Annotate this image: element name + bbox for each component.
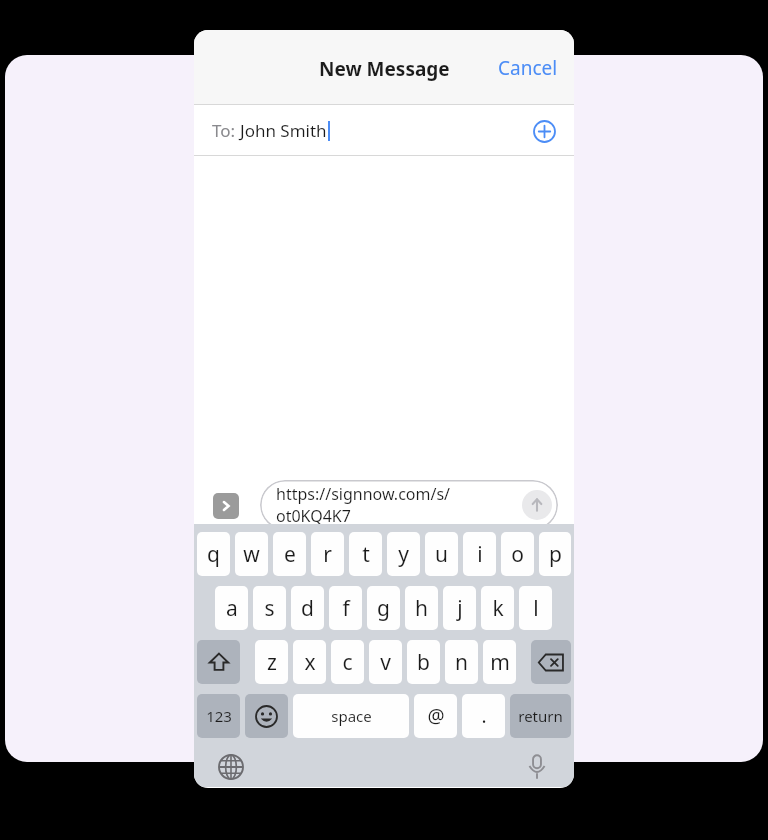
staticText: . — [481, 703, 487, 729]
staticText: y — [398, 540, 409, 569]
button[interactable]: u — [425, 532, 458, 576]
button[interactable]: Shift — [197, 640, 240, 684]
button[interactable]: Send — [522, 490, 552, 520]
button[interactable]: t — [349, 532, 382, 576]
staticText: n — [455, 648, 468, 677]
button[interactable]: n — [445, 640, 478, 684]
staticText: z — [267, 648, 277, 677]
button[interactable]: i — [463, 532, 496, 576]
staticText: w — [243, 540, 260, 569]
staticText: x — [304, 648, 316, 677]
staticText: l — [533, 594, 539, 623]
staticText: https://signnow.com/s/ — [276, 483, 451, 505]
button[interactable]: s — [253, 586, 286, 630]
button[interactable]: Emoji — [245, 694, 288, 738]
staticText: return — [518, 706, 563, 726]
button[interactable]: g — [367, 586, 400, 630]
other: Shift — [197, 640, 240, 684]
staticText: d — [301, 594, 314, 623]
staticText: v — [380, 648, 391, 677]
button[interactable]: f — [329, 586, 362, 630]
button[interactable]: . — [462, 694, 505, 738]
staticText: s — [264, 594, 275, 623]
other: Emoji — [245, 694, 288, 738]
staticText: r — [323, 540, 332, 569]
button[interactable]: r — [311, 532, 344, 576]
staticText: c — [342, 648, 353, 677]
button[interactable]: d — [291, 586, 324, 630]
staticText: o — [511, 540, 524, 569]
button[interactable]: v — [369, 640, 402, 684]
staticText: @ — [427, 703, 445, 729]
button[interactable]: p — [539, 532, 571, 576]
button[interactable]: Switch keyboard — [212, 748, 250, 786]
staticText: space — [331, 706, 372, 726]
button[interactable]: 123 — [197, 694, 240, 738]
staticText: Cancel — [498, 55, 558, 81]
button[interactable]: z — [255, 640, 288, 684]
staticText: j — [457, 594, 463, 623]
button[interactable]: k — [481, 586, 514, 630]
staticText: John Smith — [240, 119, 327, 142]
button[interactable]: y — [387, 532, 420, 576]
staticText: a — [226, 594, 238, 623]
button[interactable]: return — [510, 694, 571, 738]
staticText: ot0KQ4K7 — [276, 505, 351, 527]
staticText: h — [415, 594, 428, 623]
staticText: b — [417, 648, 430, 677]
staticText: t — [362, 540, 370, 569]
staticText: g — [377, 594, 390, 623]
button[interactable]: e — [273, 532, 306, 576]
button[interactable]: a — [215, 586, 248, 630]
button[interactable]: Add contact — [530, 117, 558, 145]
staticText: 123 — [206, 706, 232, 726]
button[interactable]: q — [197, 532, 230, 576]
button[interactable]: Dictation — [518, 748, 556, 786]
button[interactable]: https://signnow.com/s/ — [260, 480, 558, 530]
button[interactable]: space — [293, 694, 409, 738]
staticText: To: — [212, 119, 240, 142]
staticText: m — [490, 648, 510, 677]
button[interactable]: Cancel — [488, 49, 568, 87]
staticText: f — [342, 594, 350, 623]
button[interactable]: x — [293, 640, 326, 684]
staticText: u — [435, 540, 448, 569]
button[interactable]: o — [501, 532, 534, 576]
button[interactable]: j — [443, 586, 476, 630]
button[interactable]: @ — [414, 694, 457, 738]
staticText: New Message — [319, 56, 450, 82]
button[interactable]: Backspace — [531, 640, 571, 684]
staticText: e — [284, 540, 296, 569]
staticText: p — [549, 540, 562, 569]
button[interactable]: l — [519, 586, 552, 630]
button[interactable]: Expand apps — [213, 493, 239, 519]
other: Backspace — [531, 640, 571, 684]
button[interactable]: m — [483, 640, 516, 684]
staticText: q — [207, 540, 220, 569]
button[interactable]: h — [405, 586, 438, 630]
staticText: i — [477, 540, 483, 569]
staticText: k — [492, 594, 504, 623]
button[interactable]: b — [407, 640, 440, 684]
button[interactable]: w — [235, 532, 268, 576]
button[interactable]: c — [331, 640, 364, 684]
